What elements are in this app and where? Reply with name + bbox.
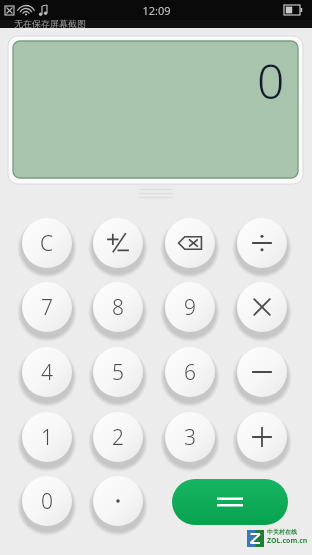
button[interactable]: Multiply	[237, 282, 287, 332]
staticText: C	[40, 229, 54, 258]
button[interactable]: 4	[22, 347, 72, 397]
button[interactable]: C	[22, 218, 72, 268]
button[interactable]: 0	[22, 476, 72, 526]
button[interactable]: 1	[22, 412, 72, 462]
staticText: 无在保存屏幕截图	[14, 18, 86, 28]
staticText: 5	[112, 358, 124, 387]
staticText: 3	[184, 423, 196, 452]
staticText: 12:09	[142, 3, 171, 18]
button[interactable]: Backspace	[165, 218, 215, 268]
button[interactable]: 8	[93, 282, 143, 332]
staticText: 6	[184, 358, 196, 387]
staticText: 0	[41, 487, 53, 516]
staticText: 8	[112, 293, 124, 322]
staticText: 7	[41, 293, 53, 322]
button[interactable]: Minus	[237, 347, 287, 397]
staticText: 中关村在线	[267, 528, 297, 536]
staticText: 9	[184, 293, 196, 322]
staticText: 2	[112, 423, 124, 452]
button[interactable]: Decimal point	[93, 476, 143, 526]
button[interactable]: Divide	[237, 218, 287, 268]
staticText: 4	[41, 358, 53, 387]
staticText: 0	[257, 48, 285, 108]
button[interactable]: 5	[93, 347, 143, 397]
button[interactable]: 6	[165, 347, 215, 397]
button[interactable]: 3	[165, 412, 215, 462]
button[interactable]: 7	[22, 282, 72, 332]
staticText: 1	[41, 423, 53, 452]
button[interactable]: 2	[93, 412, 143, 462]
staticText: ZOL.com.cn	[267, 536, 308, 546]
button[interactable]: Plus minus sign	[93, 218, 143, 268]
button[interactable]: Equals	[172, 479, 288, 525]
button[interactable]: Plus	[237, 412, 287, 462]
button[interactable]: 9	[165, 282, 215, 332]
